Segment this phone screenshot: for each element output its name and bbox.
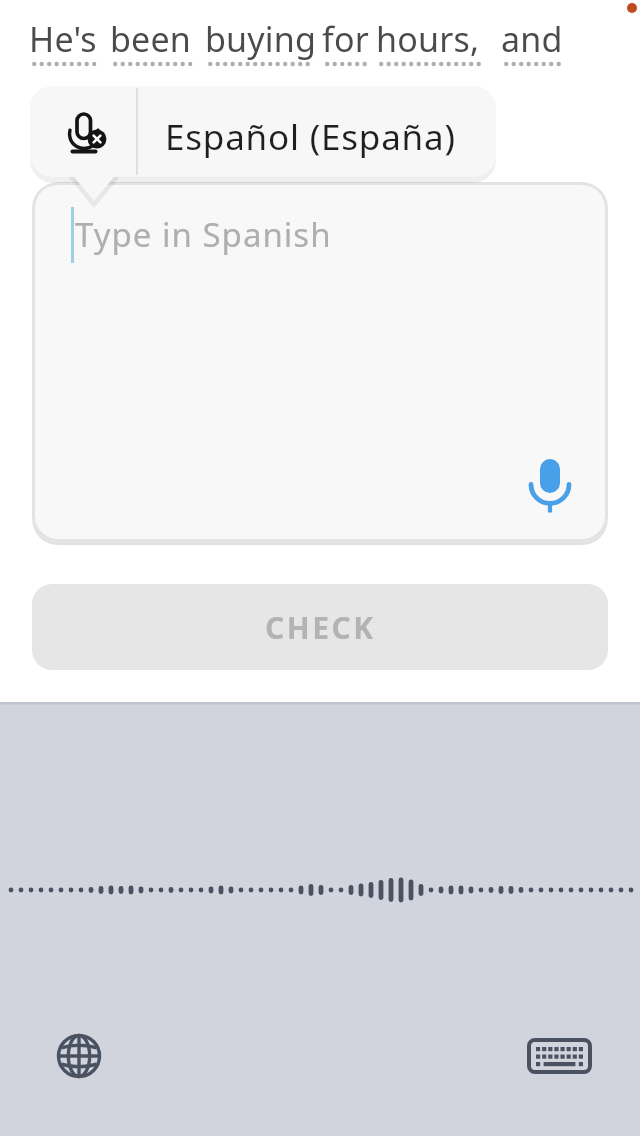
staticText: hours, [376, 16, 480, 62]
button[interactable]: CHECK [32, 584, 608, 670]
button[interactable] [525, 1032, 595, 1080]
staticText: Type in Spanish [75, 212, 332, 257]
button[interactable]: Español (España) [30, 86, 496, 177]
staticText: and [501, 16, 563, 62]
button[interactable]: Type in Spanish [32, 182, 608, 542]
staticText: He's [29, 16, 97, 62]
staticText: been [110, 16, 192, 62]
staticText: Español (España) [165, 113, 456, 161]
staticText: for [322, 16, 369, 62]
staticText: buying [205, 16, 317, 62]
staticText: CHECK [265, 607, 376, 648]
button[interactable] [55, 1032, 103, 1080]
